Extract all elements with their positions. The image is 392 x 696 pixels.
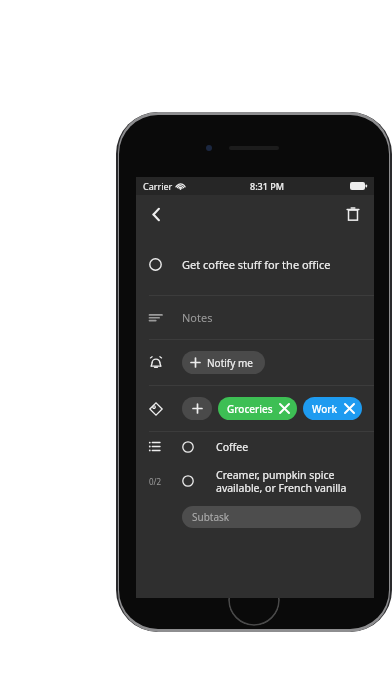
staticText: Carrier bbox=[143, 180, 173, 192]
button[interactable]: Groceries bbox=[218, 397, 297, 420]
button[interactable]: Notes bbox=[136, 296, 374, 339]
staticText: Creamer, pumpkin spice available, or Fre… bbox=[216, 468, 347, 495]
button[interactable]: Notify me bbox=[182, 351, 265, 374]
staticText: Subtask bbox=[192, 510, 230, 524]
staticText: Groceries bbox=[227, 402, 273, 416]
staticText: Coffee bbox=[216, 440, 249, 454]
staticText: 0/2 bbox=[149, 476, 162, 487]
staticText: 8:31 PM bbox=[250, 180, 284, 192]
button[interactable]: Subtask bbox=[182, 506, 361, 528]
staticText: Notes bbox=[182, 310, 213, 325]
button[interactable]: Work bbox=[303, 397, 362, 420]
button[interactable]: Back bbox=[140, 198, 172, 230]
button[interactable]: Delete bbox=[338, 199, 368, 229]
staticText: Notify me bbox=[207, 356, 253, 370]
button[interactable]: 0/2 bbox=[149, 461, 374, 501]
button[interactable]: Get coffee stuff for the office bbox=[136, 233, 374, 295]
staticText: Get coffee stuff for the office bbox=[182, 257, 331, 272]
button[interactable]: Coffee bbox=[149, 432, 374, 461]
button[interactable]: Add tag bbox=[182, 397, 212, 420]
staticText: Work bbox=[312, 402, 338, 416]
